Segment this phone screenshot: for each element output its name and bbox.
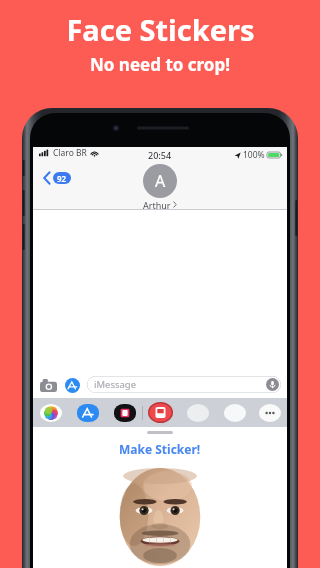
staticText: 20:54 [148, 149, 172, 161]
button[interactable]: Camera [39, 376, 57, 394]
button[interactable]: App [224, 404, 246, 422]
staticText: No need to crop! [90, 53, 230, 76]
staticText: Claro BR [53, 147, 87, 159]
button[interactable]: App [187, 404, 209, 422]
button[interactable]: Back to 92 conversations [41, 169, 73, 187]
button[interactable]: Photos [40, 404, 62, 422]
button[interactable]: App Store [63, 376, 81, 394]
button[interactable]: A [143, 164, 177, 210]
staticText: iMessage [94, 378, 137, 391]
staticText: Face Stickers [66, 10, 255, 49]
button[interactable]: More apps [259, 404, 281, 422]
staticText: Arthur [143, 199, 171, 210]
staticText: 92 [57, 173, 67, 184]
button[interactable]: Sticker app [114, 404, 136, 422]
button[interactable]: Make Sticker! [111, 440, 209, 458]
staticText: 100% [243, 149, 265, 161]
button[interactable]: App Store [77, 404, 99, 422]
staticText: A [155, 170, 166, 192]
button[interactable]: iMessage [87, 376, 281, 393]
button[interactable]: Dictate [266, 378, 279, 391]
staticText: Make Sticker! [119, 441, 201, 457]
button[interactable]: Face Stickers app, selected [148, 402, 173, 423]
button[interactable]: Drag handle [147, 431, 173, 434]
